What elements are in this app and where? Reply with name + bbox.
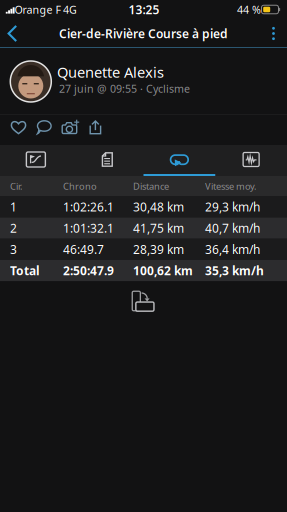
staticText: 46:49.7 — [63, 241, 104, 257]
staticText: 2 — [10, 220, 17, 236]
staticText: 1:02:26.1 — [63, 199, 114, 215]
button[interactable]: Comment — [32, 116, 57, 138]
button[interactable]: Details — [72, 145, 144, 174]
staticText: 28,39 km — [133, 241, 184, 257]
staticText: Quenette Alexis — [57, 62, 164, 82]
staticText: 2:50:47.9 — [63, 262, 114, 278]
staticText: Orange F — [14, 2, 61, 17]
staticText: 1 — [10, 199, 17, 215]
staticText: 27 juin @ 09:55 · Cyclisme — [59, 81, 190, 96]
staticText: 30,48 km — [133, 199, 184, 215]
staticText: 3 — [10, 241, 17, 257]
button[interactable]: Like — [5, 116, 31, 138]
button[interactable]: Map — [0, 145, 72, 174]
staticText: Distance — [133, 180, 169, 192]
staticText: Chrono — [63, 180, 97, 192]
staticText: 100,62 km — [133, 262, 193, 278]
staticText: Cier-de-Rivière Course à pied — [59, 25, 228, 41]
button[interactable]: More options — [262, 20, 285, 46]
button[interactable]: Rotate for landscape — [124, 283, 163, 319]
staticText: 36,4 km/h — [205, 241, 260, 257]
button[interactable]: Back — [2, 21, 23, 46]
staticText: 29,3 km/h — [205, 199, 260, 215]
staticText: 41,75 km — [133, 220, 184, 236]
staticText: 13:25 — [128, 1, 159, 17]
button[interactable]: Laps — [143, 145, 215, 174]
staticText: 4G — [63, 2, 77, 17]
staticText: Cir. — [10, 180, 23, 192]
button[interactable]: Share — [84, 116, 106, 138]
staticText: 40,7 km/h — [205, 220, 260, 236]
staticText: Total — [10, 262, 40, 278]
staticText: 35,3 km/h — [205, 262, 264, 278]
button[interactable]: Add photo — [57, 116, 85, 138]
staticText: Vitesse moy. — [205, 180, 257, 192]
button[interactable]: Analysis — [215, 145, 287, 174]
staticText: 1:01:32.1 — [63, 220, 114, 236]
staticText: 44 % — [237, 2, 261, 17]
